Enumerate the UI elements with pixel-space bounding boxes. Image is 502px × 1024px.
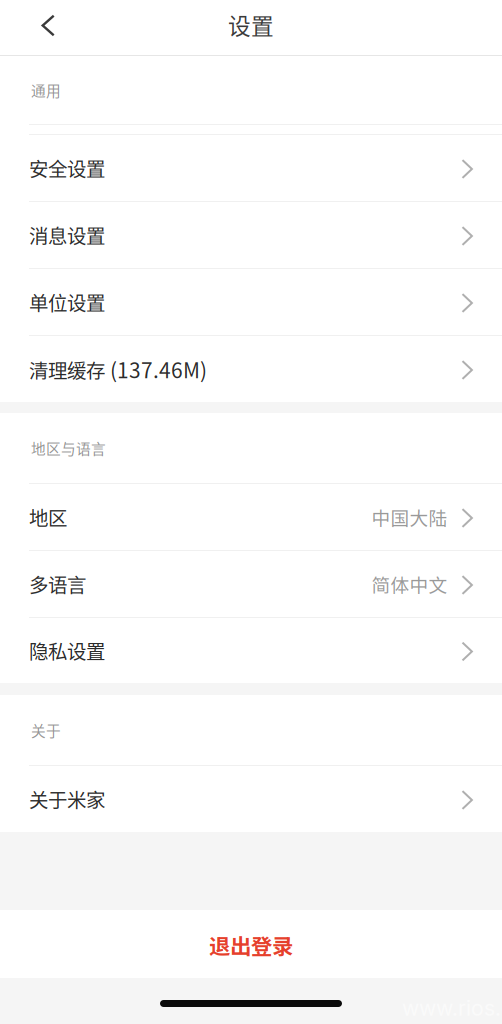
staticText: 多语言 [29,570,86,598]
button[interactable]: 隐私设置 [0,618,502,683]
button[interactable]: 安全设置 [0,135,502,201]
button[interactable]: 多语言 [0,551,502,617]
button[interactable]: 退出登录 [0,910,502,978]
staticText: 简体中文 [371,570,447,597]
staticText: 通用 [31,79,61,101]
staticText: 安全设置 [29,154,105,182]
button[interactable]: 地区 [0,484,502,550]
button[interactable]: 关于米家 [0,766,502,832]
staticText: 清理缓存 (137.46M) [29,354,207,384]
button[interactable]: 消息设置 [0,202,502,268]
staticText: 隐私设置 [29,636,105,665]
button[interactable]: 清理缓存 (137.46M) [0,336,502,402]
button[interactable]: Back [25,2,71,48]
staticText: 单位设置 [29,288,105,316]
button[interactable]: 单位设置 [0,269,502,335]
staticText: 设置 [228,8,274,41]
staticText: 地区与语言 [31,437,106,459]
staticText: 关于 [31,719,61,741]
staticText: 退出登录 [209,930,293,960]
staticText: 地区 [29,503,67,531]
staticText: 关于米家 [29,785,105,813]
staticText: 消息设置 [29,221,105,249]
staticText: 中国大陆 [371,503,447,530]
